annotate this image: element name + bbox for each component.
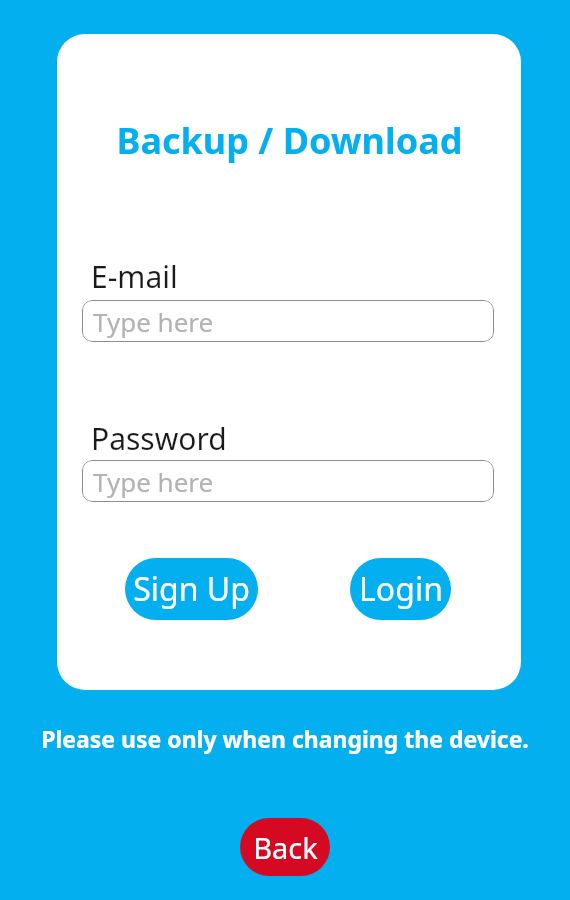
button[interactable]: Login <box>350 558 451 620</box>
staticText: Password <box>91 418 227 459</box>
button[interactable]: Type here <box>82 460 494 502</box>
button[interactable]: Type here <box>82 300 494 342</box>
staticText: Type here <box>93 304 214 339</box>
staticText: Back <box>253 828 318 867</box>
staticText: Type here <box>93 464 214 499</box>
staticText: Please use only when changing the device… <box>41 723 529 754</box>
button[interactable]: Sign Up <box>125 558 258 620</box>
staticText: Sign Up <box>133 567 250 611</box>
staticText: Login <box>359 567 443 611</box>
button[interactable]: Back <box>240 818 330 876</box>
staticText: E-mail <box>91 256 178 297</box>
staticText: Backup / Download <box>116 116 463 165</box>
